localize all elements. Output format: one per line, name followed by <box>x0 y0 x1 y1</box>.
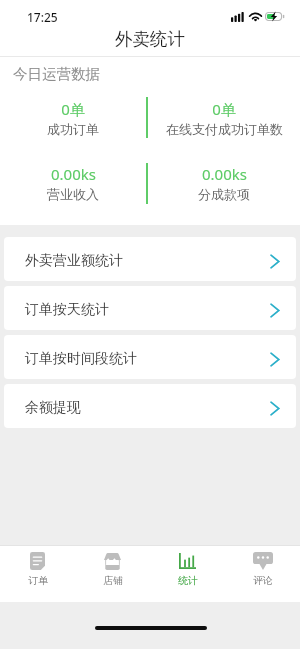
button[interactable]: 余额提现 <box>4 384 296 428</box>
staticText: 订单按时间段统计 <box>25 350 137 368</box>
staticText: 评论 <box>253 574 273 587</box>
button[interactable]: 店铺 <box>75 546 150 602</box>
button[interactable]: 订单按天统计 <box>4 286 296 330</box>
staticText: 统计 <box>178 574 198 587</box>
staticText: 在线支付成功订单数 <box>166 121 283 137</box>
staticText: 0.00ks <box>202 164 247 184</box>
button[interactable]: 统计 <box>150 546 225 602</box>
staticText: 订单按天统计 <box>25 301 109 319</box>
button[interactable]: 评论 <box>225 546 300 602</box>
button[interactable]: 外卖营业额统计 <box>4 237 296 281</box>
staticText: 订单 <box>28 574 48 587</box>
staticText: 0.00ks <box>51 164 96 184</box>
staticText: 营业收入 <box>47 186 99 202</box>
staticText: 17:25 <box>27 9 58 25</box>
button[interactable]: 订单按时间段统计 <box>4 335 296 379</box>
staticText: 外卖营业额统计 <box>25 252 123 270</box>
staticText: 今日运营数据 <box>13 65 100 83</box>
staticText: 0单 <box>61 99 85 119</box>
staticText: 分成款项 <box>198 186 250 202</box>
button[interactable]: 订单 <box>0 546 75 602</box>
staticText: 店铺 <box>103 574 123 587</box>
staticText: 成功订单 <box>47 121 99 137</box>
staticText: 余额提现 <box>25 399 81 417</box>
staticText: 0单 <box>212 99 236 119</box>
staticText: 外卖统计 <box>115 28 185 50</box>
